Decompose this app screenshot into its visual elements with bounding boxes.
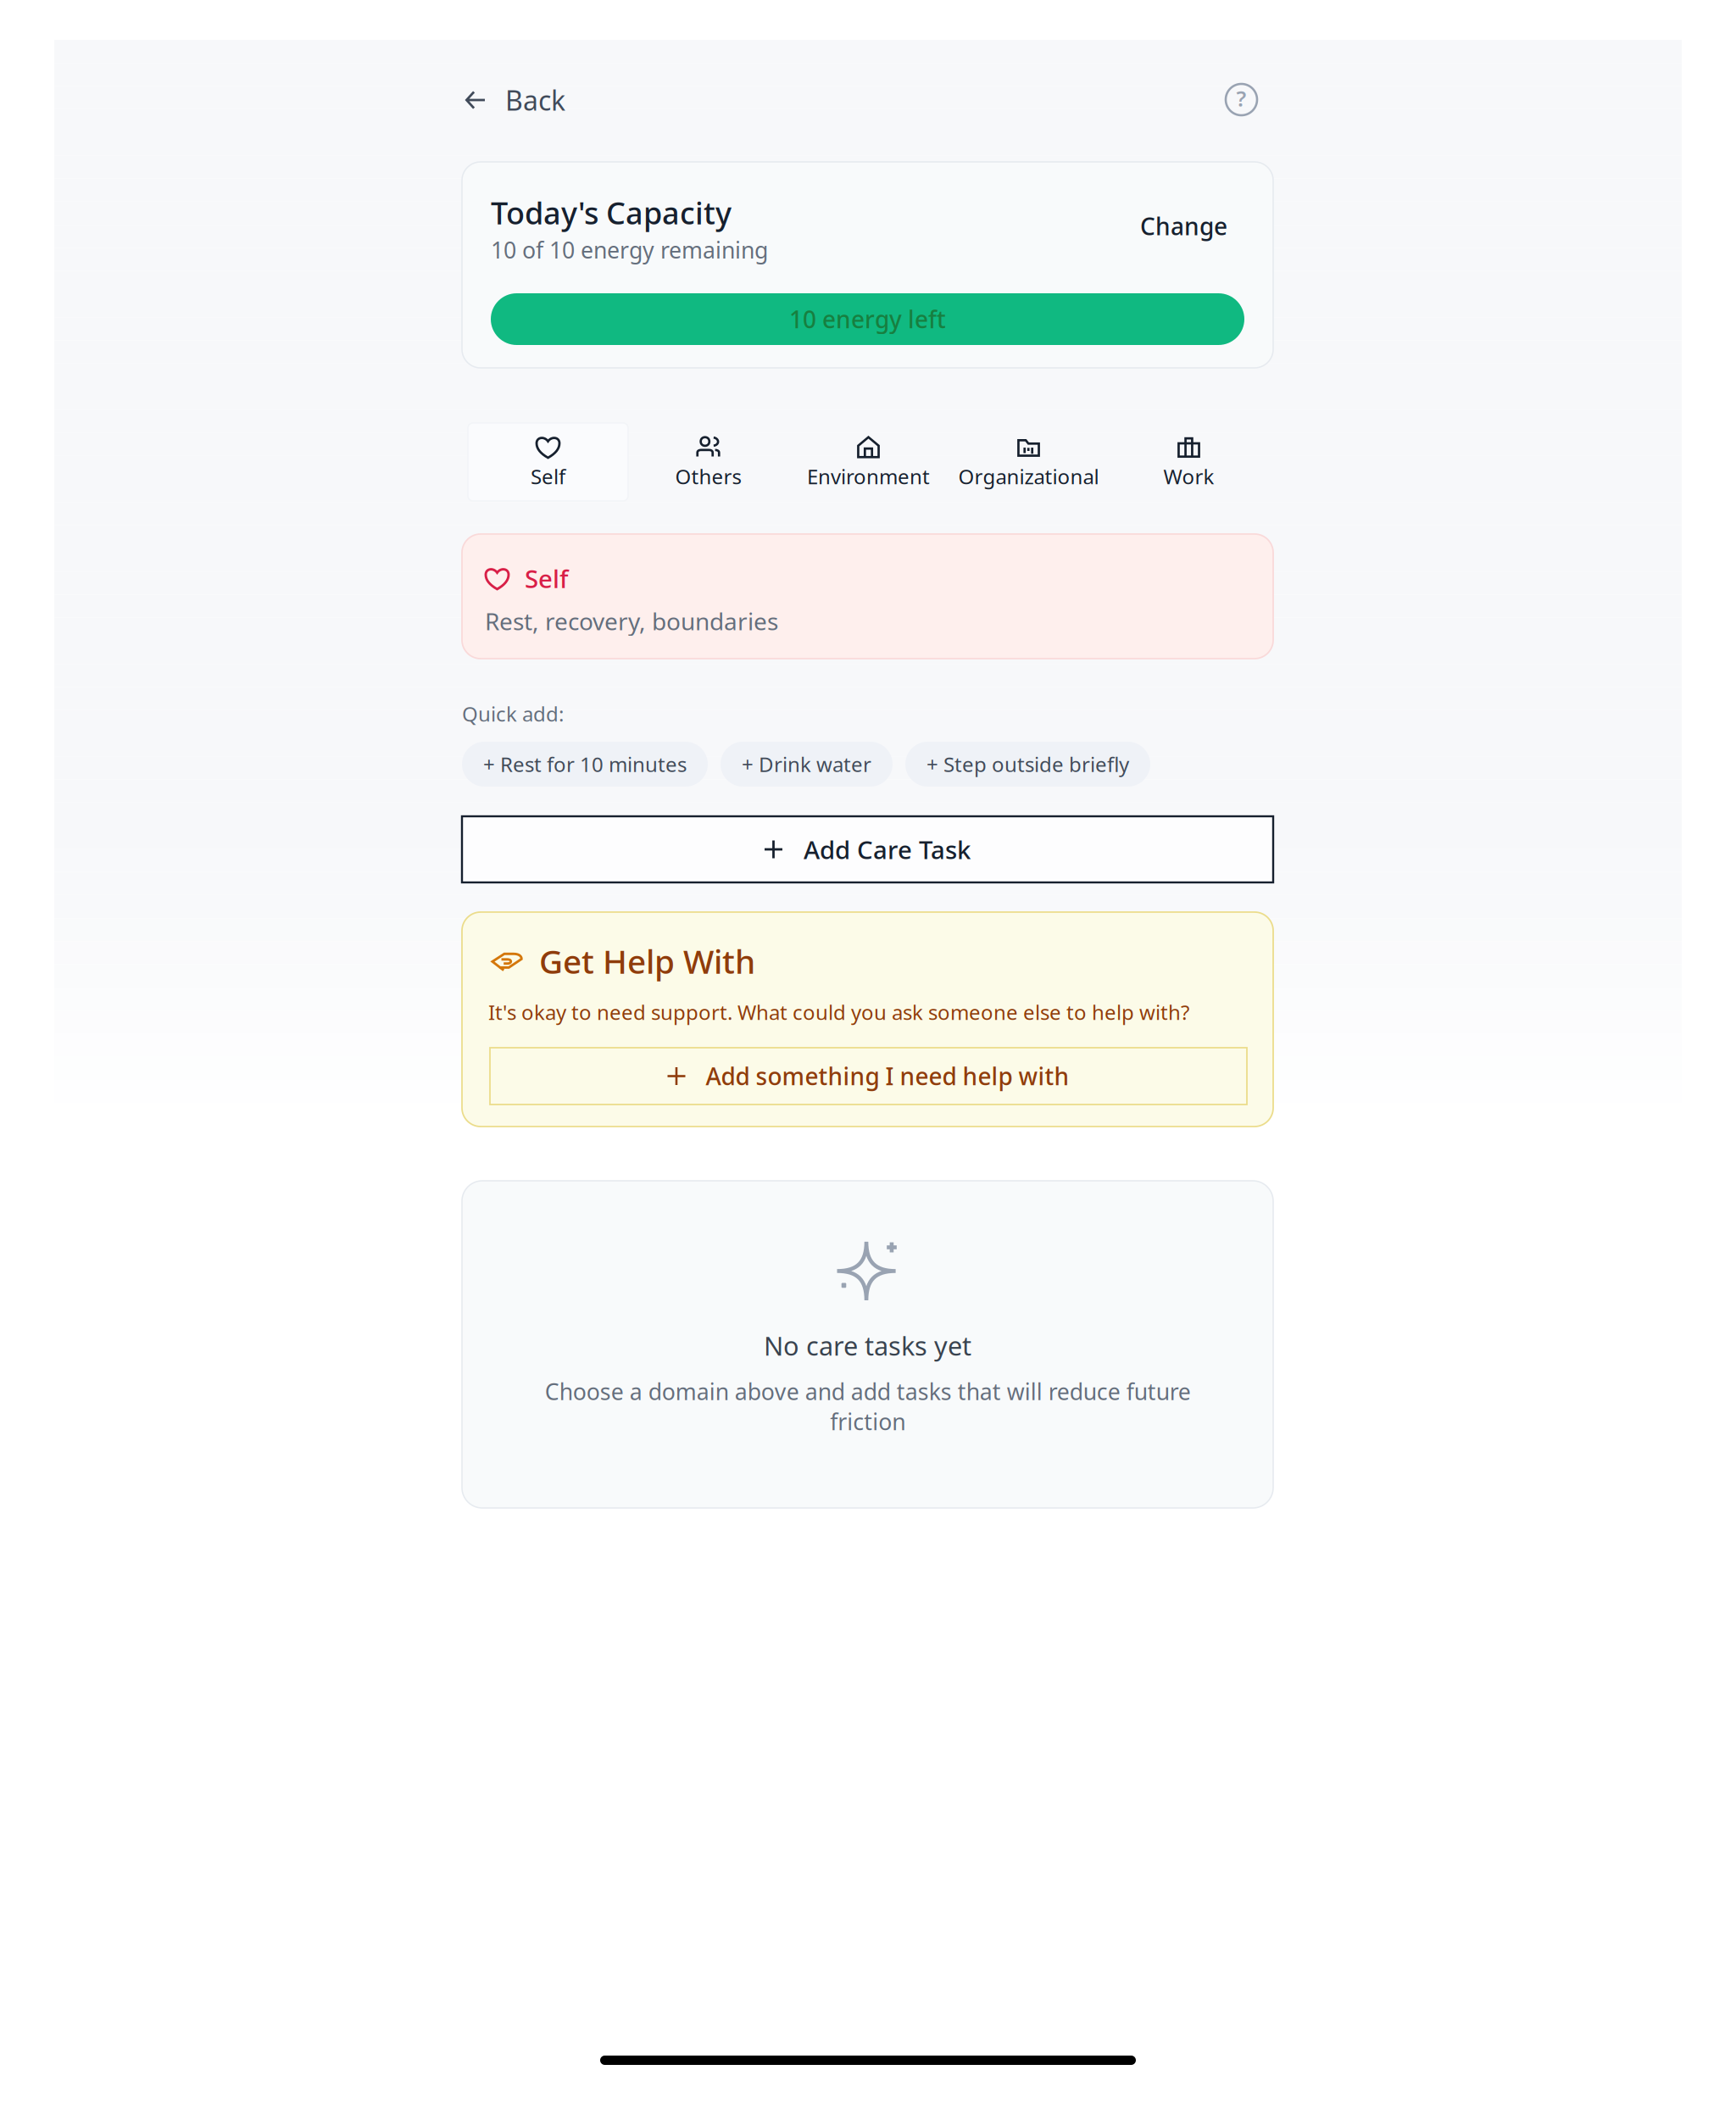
staticText: Self [531, 463, 565, 490]
staticText: + Drink water [742, 751, 871, 778]
button[interactable]: Self [468, 423, 628, 501]
staticText: Others [675, 463, 741, 490]
staticText: 10 of 10 energy remaining [491, 235, 768, 265]
staticText: + Rest for 10 minutes [483, 751, 687, 778]
staticText: Change [1140, 210, 1227, 242]
staticText: Get Help With [539, 939, 755, 983]
staticText: Add Care Task [804, 833, 971, 866]
button[interactable]: Back [460, 81, 570, 119]
staticText: Today's Capacity [491, 192, 732, 233]
button[interactable]: Work [1109, 423, 1269, 501]
staticText: ? [1236, 84, 1246, 113]
button[interactable]: + Rest for 10 minutes [462, 742, 708, 787]
button[interactable]: Add Care Task [462, 816, 1273, 882]
staticText: Environment [807, 463, 930, 490]
staticText: Rest, recovery, boundaries [485, 605, 778, 637]
staticText: Organizational [958, 463, 1099, 490]
button[interactable]: Others [628, 423, 788, 501]
button[interactable]: Environment [788, 423, 949, 501]
staticText: Quick add: [462, 700, 564, 727]
staticText: It's okay to need support. What could yo… [488, 999, 1189, 1026]
button[interactable]: Organizational [949, 423, 1109, 501]
button[interactable]: Change [1128, 203, 1239, 249]
staticText: No care tasks yet [764, 1328, 971, 1363]
staticText: 10 energy left [789, 303, 946, 335]
button[interactable]: + Step outside briefly [905, 742, 1150, 787]
button[interactable]: Help [1216, 74, 1267, 125]
staticText: Back [505, 82, 565, 118]
button[interactable]: Add something I need help with [490, 1048, 1247, 1105]
staticText: Choose a domain above and add tasks that… [545, 1376, 1191, 1436]
button[interactable]: + Drink water [721, 742, 893, 787]
staticText: Work [1163, 463, 1214, 490]
staticText: + Step outside briefly [926, 751, 1129, 778]
staticText: Self [525, 562, 568, 595]
staticText: Add something I need help with [706, 1060, 1069, 1092]
